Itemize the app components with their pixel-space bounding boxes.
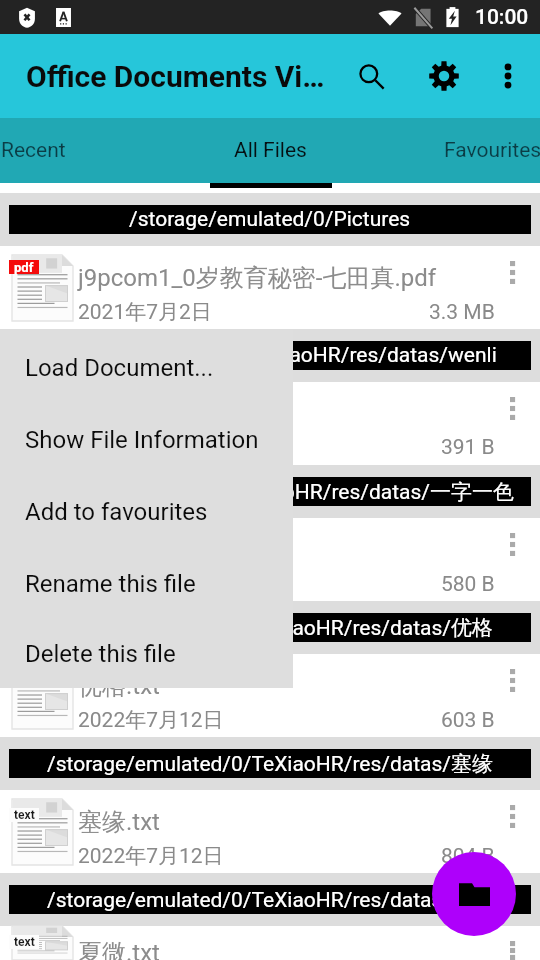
button[interactable]: Add to favourites — [0, 476, 293, 548]
staticText: Favourites — [444, 138, 540, 163]
button[interactable]: Delete this file — [0, 620, 293, 688]
button[interactable]: Item options — [492, 654, 540, 737]
button[interactable]: Open folder — [432, 852, 516, 936]
staticText: 夏微.txt — [78, 938, 160, 960]
staticText: 580 B — [441, 572, 495, 597]
button[interactable]: Item options — [492, 382, 540, 465]
button[interactable]: Search — [337, 34, 405, 118]
staticText: /storage/emulated/0/TeXiaoHR/res/datas/夏… — [47, 887, 494, 913]
button[interactable]: Favourites — [403, 118, 540, 183]
staticText: All Files — [234, 138, 307, 163]
staticText: Delete this file — [25, 640, 176, 668]
staticText: /storage/emulated/0/TeXiaoHR/res/datas/塞… — [47, 751, 494, 777]
button[interactable]: All Files — [180, 118, 360, 183]
button[interactable]: Show File Information — [0, 404, 293, 476]
staticText: 603 B — [441, 708, 495, 733]
staticText: 2022年7月12日 — [78, 707, 224, 733]
staticText: j9pcom1_0岁教育秘密-七田真.pdf — [78, 263, 437, 293]
button[interactable]: Load Document... — [0, 332, 293, 404]
button[interactable]: pdf — [0, 246, 540, 329]
staticText: /storage/emulated/0/TeXiaoHR/res/datas/一… — [26, 479, 515, 505]
button[interactable]: text — [0, 382, 540, 465]
button[interactable]: text — [0, 518, 540, 601]
staticText: text — [14, 935, 35, 949]
staticText: 3.3 MB — [429, 300, 495, 325]
staticText: 塞缘.txt — [78, 807, 160, 837]
button[interactable]: text — [0, 654, 540, 737]
staticText: 2022年7月12日 — [78, 843, 224, 869]
staticText: Rename this file — [25, 570, 196, 598]
staticText: 10:00 — [475, 5, 529, 30]
staticText: Show File Information — [25, 426, 259, 454]
button[interactable]: Recent — [0, 118, 123, 183]
button[interactable]: Item options — [492, 790, 540, 873]
button[interactable]: Item options — [492, 518, 540, 601]
button[interactable]: Item options — [492, 926, 540, 960]
staticText: 2022年7月12日 — [78, 434, 224, 460]
button[interactable]: Item options — [492, 246, 540, 329]
staticText: 优格.txt — [78, 671, 160, 701]
staticText: Add to favourites — [25, 498, 208, 526]
button[interactable]: More options — [478, 34, 538, 118]
button[interactable]: Rename this file — [0, 548, 293, 620]
staticText: /storage/emulated/0/Pictures — [129, 207, 411, 232]
button[interactable]: text — [0, 790, 540, 873]
staticText: 2022年7月12日 — [78, 571, 224, 597]
staticText: /storage/emulated/0/TeXiaoHR/res/datas/w… — [44, 343, 497, 368]
staticText: 804 B — [441, 844, 495, 869]
staticText: Recent — [1, 138, 66, 163]
staticText: 391 B — [441, 435, 495, 460]
staticText: Office Documents Vi… — [26, 59, 325, 94]
staticText: text — [14, 808, 35, 822]
staticText: /storage/emulated/0/TeXiaoHR/res/datas/优… — [47, 615, 494, 641]
button[interactable]: Settings — [410, 34, 478, 118]
staticText: Load Document... — [25, 354, 214, 382]
button[interactable]: text — [0, 926, 540, 960]
staticText: 2021年7月2日 — [78, 299, 212, 325]
staticText: pdf — [14, 260, 34, 274]
